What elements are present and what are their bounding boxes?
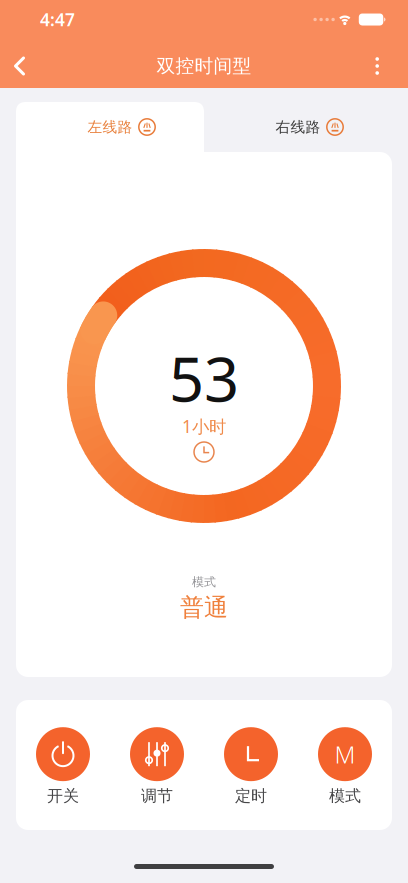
staticText: 左线路	[87, 118, 132, 136]
staticText: M	[334, 738, 355, 770]
button[interactable]: 定时	[224, 726, 278, 804]
staticText: 定时	[235, 786, 267, 806]
staticText: 模式	[192, 575, 216, 589]
staticText: 4:47	[40, 8, 75, 31]
staticText: 开关	[47, 786, 79, 806]
button[interactable]: 左线路	[16, 102, 204, 152]
button[interactable]: 右线路	[204, 102, 392, 152]
staticText: 1小时	[182, 415, 226, 438]
staticText: 调节	[141, 786, 173, 806]
staticText: 普通	[180, 593, 228, 622]
button[interactable]: Back	[0, 44, 26, 88]
staticText: 模式	[329, 786, 361, 806]
button[interactable]: M	[318, 726, 372, 804]
button[interactable]: More	[375, 43, 408, 89]
staticText: 53	[169, 337, 239, 419]
button[interactable]: 调节	[130, 726, 184, 804]
staticText: 双控时间型	[156, 54, 251, 77]
button[interactable]: 开关	[36, 726, 90, 804]
staticText: 右线路	[275, 118, 320, 136]
